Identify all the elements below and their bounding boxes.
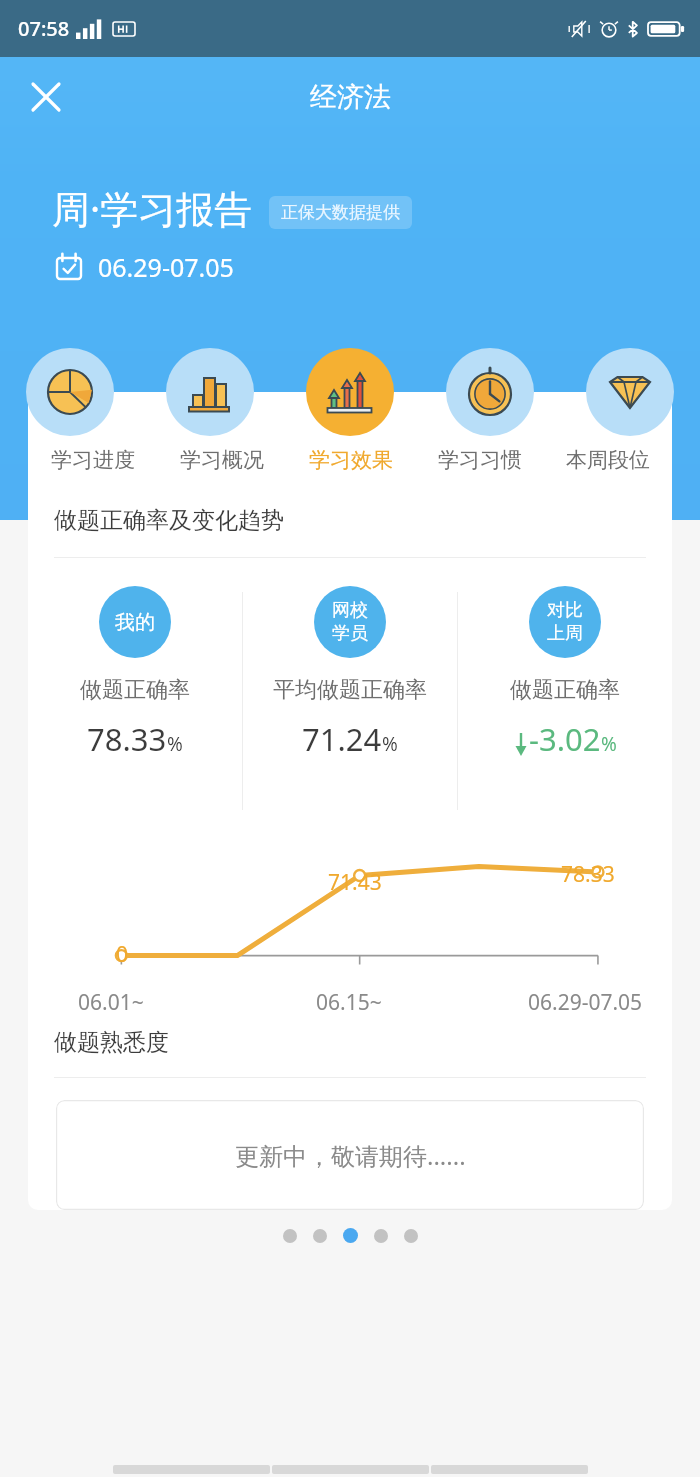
staticText: 我的: [115, 610, 155, 635]
staticText: 经济法: [310, 80, 391, 114]
staticText: 0: [116, 940, 129, 969]
button[interactable]: 学习概况: [166, 348, 254, 436]
button[interactable]: 学习进度: [28, 440, 157, 480]
staticText: 78.33: [87, 718, 167, 760]
staticText: %: [167, 731, 183, 757]
staticText: 平均做题正确率: [273, 676, 427, 704]
button[interactable]: 对比: [458, 586, 672, 760]
staticText: 做题正确率: [80, 676, 190, 704]
button[interactable]: 学习概况: [157, 440, 286, 480]
staticText: -3.02: [529, 718, 601, 760]
staticText: 06.01~: [78, 988, 144, 1017]
button[interactable]: 学习习惯: [446, 348, 534, 436]
staticText: 学习习惯: [438, 447, 522, 473]
staticText: 本周段位: [566, 447, 650, 473]
staticText: 网校: [332, 599, 368, 622]
button[interactable]: 学习效果: [286, 440, 415, 480]
staticText: 06.15~: [316, 988, 382, 1017]
staticText: %: [601, 731, 617, 757]
button[interactable]: 网校: [243, 586, 457, 760]
staticText: 学习概况: [180, 447, 264, 473]
staticText: 上周: [547, 622, 583, 645]
button[interactable]: [283, 1229, 297, 1243]
button[interactable]: 本周段位: [544, 440, 672, 480]
button[interactable]: 学习进度: [26, 348, 114, 436]
staticText: 学习进度: [51, 447, 135, 473]
staticText: 78.33: [561, 860, 615, 889]
staticText: 学习效果: [309, 447, 393, 473]
staticText: 做题正确率: [510, 676, 620, 704]
staticText: %: [382, 731, 398, 757]
staticText: 更新中，敬请期待......: [235, 1139, 466, 1172]
staticText: 71.24: [302, 718, 382, 760]
staticText: 06.29-07.05: [98, 250, 234, 284]
staticText: 06.29-07.05: [528, 988, 643, 1017]
button[interactable]: [404, 1229, 418, 1243]
button[interactable]: [313, 1229, 327, 1243]
staticText: 周·学习报告: [52, 182, 253, 234]
button[interactable]: 本周段位: [586, 348, 674, 436]
button[interactable]: [374, 1229, 388, 1243]
button[interactable]: Close: [14, 65, 78, 129]
staticText: 做题熟悉度: [54, 1028, 169, 1057]
staticText: 71.43: [328, 868, 382, 897]
button[interactable]: [343, 1228, 358, 1243]
button[interactable]: 学习效果: [306, 348, 394, 436]
staticText: 正保大数据提供: [281, 202, 400, 223]
staticText: 07:58: [18, 15, 70, 42]
staticText: 对比: [547, 599, 583, 622]
staticText: 学员: [332, 622, 368, 645]
staticText: 做题正确率及变化趋势: [54, 506, 284, 535]
button[interactable]: 学习习惯: [415, 440, 544, 480]
button[interactable]: 我的: [28, 586, 242, 760]
